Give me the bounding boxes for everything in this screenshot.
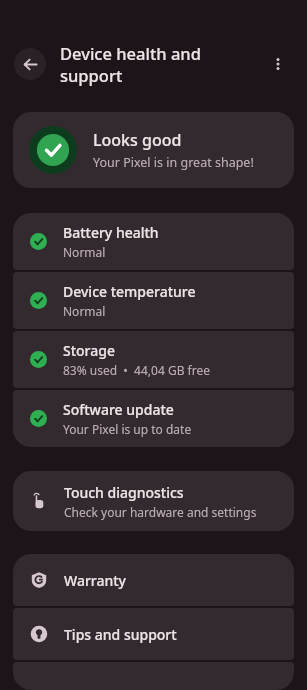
- staticText: Touch diagnostics: [64, 483, 184, 502]
- button[interactable]: Looks good: [13, 112, 294, 188]
- button[interactable]: Device temperature: [13, 272, 294, 329]
- staticText: Check your hardware and settings: [64, 504, 257, 520]
- staticText: Software update: [63, 400, 174, 419]
- staticText: Device health and support: [60, 42, 263, 86]
- staticText: Battery health: [63, 223, 159, 242]
- staticText: Normal: [63, 303, 106, 319]
- staticText: Warranty: [64, 571, 127, 590]
- staticText: Device temperature: [63, 282, 196, 301]
- button[interactable]: Touch diagnostics: [13, 471, 294, 531]
- staticText: Your Pixel is in great shape!: [93, 154, 254, 171]
- button[interactable]: More options: [263, 49, 293, 79]
- button[interactable]: Warranty: [13, 554, 294, 606]
- staticText: 83% used • 44,04 GB free: [63, 362, 210, 378]
- staticText: Your Pixel is up to date: [63, 421, 192, 437]
- button[interactable]: Back: [14, 48, 46, 80]
- staticText: Normal: [63, 244, 106, 260]
- staticText: Tips and support: [64, 625, 177, 644]
- button[interactable]: Software update: [13, 390, 294, 447]
- button[interactable]: Storage: [13, 331, 294, 388]
- button[interactable]: [13, 662, 294, 690]
- button[interactable]: Tips and support: [13, 608, 294, 660]
- staticText: Storage: [63, 341, 115, 360]
- staticText: Looks good: [93, 129, 182, 151]
- button[interactable]: Battery health: [13, 213, 294, 270]
